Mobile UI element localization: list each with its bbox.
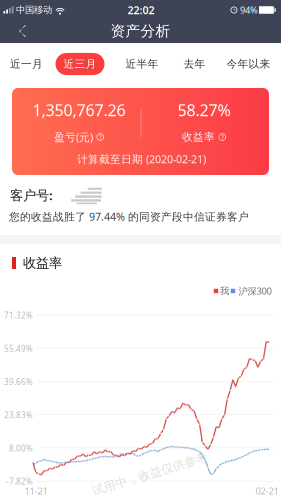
staticText: 02-21 — [255, 485, 278, 497]
button[interactable]: 近三月 — [55, 53, 104, 75]
button[interactable]: Back — [3, 17, 41, 45]
staticText: 22:02 — [127, 3, 154, 17]
staticText: 近三月 — [63, 57, 96, 70]
staticText: 11-21 — [24, 485, 47, 497]
staticText: 收益率 — [23, 255, 62, 271]
staticText: 8.00% — [9, 443, 33, 454]
button[interactable]: 近一月 — [4, 52, 49, 75]
staticText: 39.66% — [4, 377, 33, 387]
staticText: 盈亏(元) — [54, 130, 93, 144]
button[interactable]: 近半年 — [119, 52, 164, 75]
staticText: 试用中，收益仅供参考 — [90, 467, 210, 481]
staticText: 收益率 — [182, 130, 215, 143]
staticText: 去年 — [183, 57, 205, 70]
button[interactable]: 今年以来 — [220, 52, 276, 75]
staticText: 计算截至日期 (2020-02-21) — [77, 152, 206, 166]
staticText: 沪深300 — [238, 285, 271, 297]
staticText: 我 — [220, 285, 229, 297]
staticText: 94% — [240, 4, 258, 16]
staticText: 中国移动 — [16, 4, 52, 16]
staticText: 近一月 — [10, 57, 43, 70]
staticText: 55.49% — [4, 343, 33, 354]
staticText: 58.27% — [177, 99, 230, 121]
staticText: 23.83% — [4, 410, 33, 420]
staticText: 今年以来 — [226, 57, 270, 70]
staticText: 近半年 — [125, 57, 158, 70]
staticText: 资产分析 — [110, 22, 170, 40]
staticText: 71.32% — [4, 310, 33, 321]
staticText: 1,350,767.26 — [32, 99, 125, 121]
staticText: 客户号: — [10, 186, 53, 204]
button[interactable]: 去年 — [177, 52, 211, 75]
staticText: 您的收益战胜了 97.44% 的同资产段中信证券客户 — [9, 209, 249, 224]
staticText: -7.82% — [6, 476, 33, 487]
